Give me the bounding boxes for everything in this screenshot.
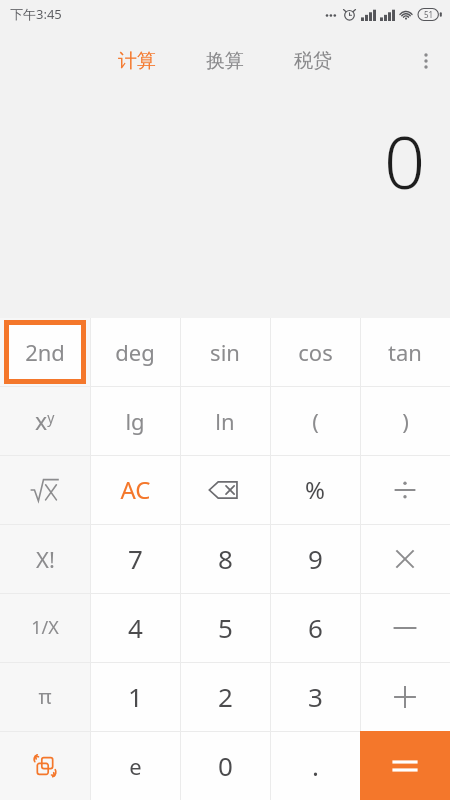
button[interactable]: cos: [270, 318, 360, 386]
button[interactable]: lg: [90, 386, 180, 455]
button[interactable]: π: [0, 662, 90, 731]
button[interactable]: Equals: [360, 731, 450, 800]
staticText: 换算: [206, 49, 244, 73]
button[interactable]: 计算: [110, 43, 164, 79]
staticText: ): [402, 406, 409, 436]
staticText: 9: [308, 541, 323, 576]
button[interactable]: 1/X: [0, 593, 90, 662]
button[interactable]: X!: [0, 524, 90, 593]
button[interactable]: 3: [270, 662, 360, 731]
button[interactable]: 1: [90, 662, 180, 731]
staticText: 3: [308, 679, 323, 714]
button[interactable]: 0: [180, 731, 270, 800]
button[interactable]: ): [360, 386, 450, 455]
staticText: X!: [36, 544, 55, 574]
staticText: .: [312, 748, 319, 783]
button[interactable]: xy: [0, 386, 90, 455]
button[interactable]: %: [270, 455, 360, 524]
button[interactable]: Divide: [360, 455, 450, 524]
staticText: 计算: [118, 49, 156, 73]
button[interactable]: 2nd: [0, 318, 90, 386]
button[interactable]: sin: [180, 318, 270, 386]
staticText: 0: [218, 748, 233, 783]
button[interactable]: Minus: [360, 593, 450, 662]
button[interactable]: 6: [270, 593, 360, 662]
staticText: 1/X: [31, 615, 59, 640]
staticText: %: [305, 473, 325, 506]
button[interactable]: 8: [180, 524, 270, 593]
staticText: 8: [218, 541, 233, 576]
button[interactable]: ln: [180, 386, 270, 455]
staticText: sin: [210, 337, 240, 367]
staticText: AC: [120, 473, 151, 506]
staticText: 5: [218, 610, 233, 645]
button[interactable]: 9: [270, 524, 360, 593]
button[interactable]: 7: [90, 524, 180, 593]
button[interactable]: tan: [360, 318, 450, 386]
staticText: 6: [308, 610, 323, 645]
button[interactable]: Convert: [0, 731, 90, 800]
button[interactable]: AC: [90, 455, 180, 524]
staticText: deg: [115, 337, 155, 367]
button[interactable]: 换算: [198, 43, 252, 79]
button[interactable]: More options: [402, 37, 450, 85]
button[interactable]: Plus: [360, 662, 450, 731]
staticText: 7: [128, 541, 143, 576]
button[interactable]: deg: [90, 318, 180, 386]
staticText: 2: [218, 679, 233, 714]
button[interactable]: (: [270, 386, 360, 455]
staticText: 51: [424, 9, 434, 20]
staticText: 税贷: [294, 49, 332, 73]
staticText: 4: [128, 610, 143, 645]
button[interactable]: .: [270, 731, 360, 800]
staticText: 2nd: [25, 337, 65, 367]
staticText: cos: [298, 337, 333, 367]
staticText: 1: [128, 679, 143, 714]
staticText: tan: [388, 337, 422, 367]
button[interactable]: Backspace: [180, 455, 270, 524]
staticText: 下午3:45: [10, 5, 62, 23]
staticText: (: [312, 406, 319, 436]
staticText: ln: [215, 406, 235, 436]
button[interactable]: Square root: [0, 455, 90, 524]
button[interactable]: 4: [90, 593, 180, 662]
staticText: 0: [384, 112, 426, 210]
button[interactable]: e: [90, 731, 180, 800]
staticText: π: [38, 683, 52, 710]
button[interactable]: 税贷: [286, 43, 340, 79]
button[interactable]: Multiply: [360, 524, 450, 593]
button[interactable]: 2: [180, 662, 270, 731]
button[interactable]: 5: [180, 593, 270, 662]
staticText: lg: [125, 406, 145, 436]
staticText: e: [129, 751, 142, 781]
staticText: xy: [35, 405, 55, 436]
